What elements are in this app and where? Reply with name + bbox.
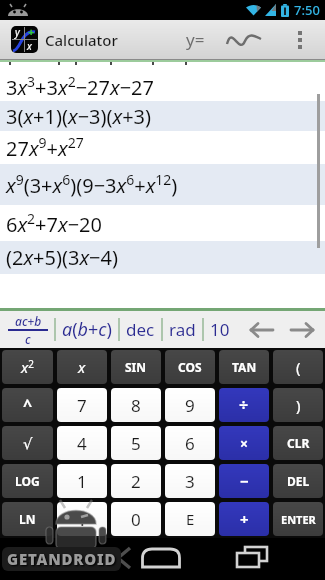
staticText: 7:50 [294,1,320,19]
button[interactable]: y= [183,25,208,54]
staticText: 5 [131,432,141,455]
staticText: (2x+5)(3x−4) [6,244,118,271]
staticText: . [80,508,85,531]
staticText: 1 [77,470,87,493]
button[interactable]: rad [169,318,196,341]
staticText: ^ [23,394,33,416]
staticText: 6 [185,432,195,455]
button[interactable]: 10 [210,318,230,341]
button[interactable]: 8 [111,388,161,422]
staticText: ÷ [239,394,249,416]
button[interactable]: 2 [111,464,161,498]
staticText: CLR [287,435,310,451]
button[interactable]: ) [273,388,323,422]
button[interactable] [141,543,181,571]
staticText: ( [296,357,301,377]
button[interactable]: . [57,502,107,536]
staticText: √ [23,435,33,452]
staticText: 9 [185,394,195,417]
staticText: Calculator [45,30,118,50]
button[interactable]: COS [165,350,215,384]
staticText: x [78,357,86,377]
staticText: LOG [15,473,40,489]
button[interactable]: − [219,464,269,498]
button[interactable]: a(b+c) [62,317,112,342]
button[interactable]: TAN [219,350,269,384]
staticText: 0 [131,508,141,531]
button[interactable]: + [219,502,269,536]
staticText: y [15,26,20,39]
staticText: x2 [21,357,34,377]
button[interactable]: 3(x+1)(x−3)(x+3) [0,101,325,131]
button[interactable]: 3x3+3x2−27x−27 [0,71,325,101]
staticText: TAN [232,359,257,375]
staticText: + [28,26,35,39]
button[interactable]: 6x2+7x−20 [0,205,325,241]
staticText: × [240,434,249,453]
staticText: + [240,509,249,529]
button[interactable]: 5 [111,426,161,460]
button[interactable]: 6 [165,426,215,460]
button[interactable]: 4 [57,426,107,460]
button[interactable]: 3 [165,464,215,498]
button[interactable]: √ [2,426,53,460]
button[interactable]: ENTER [273,502,323,536]
button[interactable]: ( [273,350,323,384]
button[interactable]: ^ [2,388,53,422]
button[interactable]: dec [126,318,155,341]
button[interactable]: E [165,502,215,536]
staticText: x [27,39,32,53]
button[interactable] [112,545,138,571]
button[interactable] [292,27,308,53]
button[interactable]: x2 [2,350,53,384]
staticText: LN [19,511,36,527]
staticText: 6x2+7x−20 [6,209,102,238]
staticText: ENTER [281,512,316,527]
staticText: c [25,331,31,347]
staticText: ) [296,395,301,415]
staticText: 2 [131,470,141,493]
button[interactable]: 0 [111,502,161,536]
staticText: COS [178,359,202,375]
button[interactable]: ÷ [219,388,269,422]
button[interactable]: 9 [165,388,215,422]
staticText: DEL [287,473,310,489]
staticText: x9(3+x6)(9−3x6+x12) [6,170,178,199]
button[interactable]: × [219,426,269,460]
button[interactable]: ac+b [8,313,48,347]
button[interactable]: LN [2,502,53,536]
button[interactable]: 7 [57,388,107,422]
staticText: ac+b [15,313,42,329]
button[interactable] [247,320,277,340]
staticText: 8 [131,394,141,417]
button[interactable]: 1 [57,464,107,498]
staticText: SIN [125,359,147,375]
staticText: GETANDROID [7,549,117,569]
staticText: 3(x+1)(x−3)(x+3) [6,103,152,130]
button[interactable]: 27x9+x27 [0,131,325,164]
button[interactable]: x [57,350,107,384]
button[interactable] [287,320,317,340]
staticText: 4 [77,432,87,455]
button[interactable] [224,28,264,52]
staticText: 27x9+x27 [6,133,84,162]
button[interactable]: SIN [111,350,161,384]
staticText: 3 [185,470,195,493]
button[interactable] [233,543,271,571]
button[interactable]: CLR [273,426,323,460]
staticText: y= [186,28,205,51]
staticText: E [186,509,195,529]
button[interactable]: x9(3+x6)(9−3x6+x12) [0,164,325,205]
button[interactable]: LOG [2,464,53,498]
button[interactable]: (2x+5)(3x−4) [0,241,325,274]
button[interactable]: DEL [273,464,323,498]
staticText: 3x3+3x2−27x−27 [6,72,154,101]
staticText: 7 [77,394,87,417]
staticText: − [240,471,249,491]
